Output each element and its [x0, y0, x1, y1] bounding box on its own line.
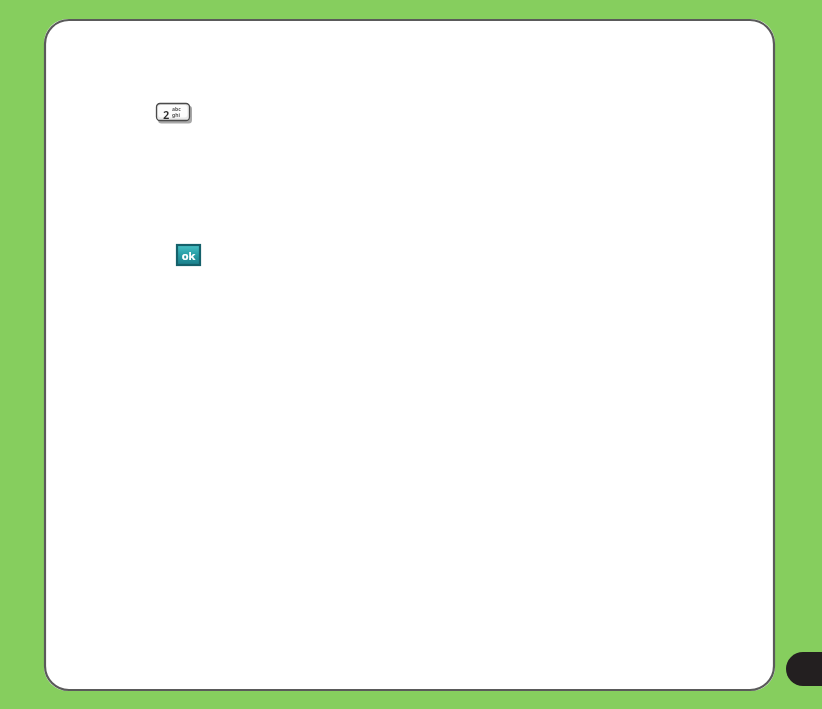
button[interactable]: Side tab [786, 652, 822, 686]
staticText: 2 [163, 107, 170, 122]
staticText: abc [172, 106, 181, 113]
button[interactable]: Keypad key 2 abc [156, 103, 192, 124]
staticText: ghi [172, 112, 180, 119]
button[interactable]: ok [177, 245, 200, 265]
button[interactable] [44, 19, 775, 691]
staticText: ok [177, 248, 200, 268]
